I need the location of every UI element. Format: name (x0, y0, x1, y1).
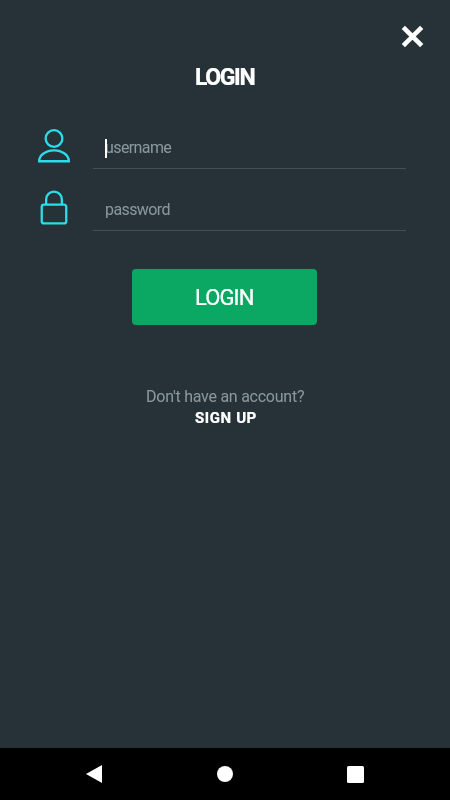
staticText: LOGIN (195, 285, 254, 311)
button[interactable]: Back (64, 748, 124, 800)
staticText: password (105, 200, 170, 219)
button[interactable]: Username field (30, 126, 410, 172)
button[interactable]: LOGIN (132, 269, 317, 325)
button[interactable]: Password field (30, 188, 410, 234)
staticText: SIGN UP (195, 409, 257, 427)
button[interactable]: Home (195, 748, 255, 800)
staticText: username (105, 138, 172, 157)
button[interactable]: Close (392, 16, 432, 56)
button[interactable]: SIGN UP (195, 409, 257, 427)
button[interactable]: Recents (325, 748, 385, 800)
staticText: LOGIN (195, 64, 255, 91)
staticText: Don't have an account? (146, 387, 305, 406)
